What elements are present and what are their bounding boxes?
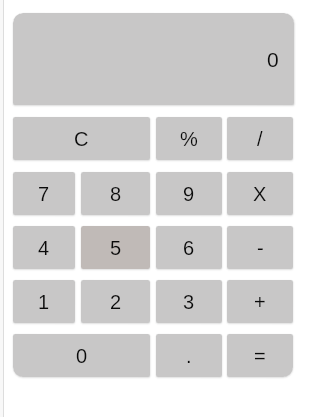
button[interactable]: .: [156, 334, 222, 377]
staticText: +: [254, 291, 266, 313]
button[interactable]: X: [227, 172, 293, 215]
button[interactable]: 9: [156, 172, 222, 215]
button[interactable]: 1: [13, 280, 75, 323]
button[interactable]: C: [13, 117, 150, 160]
staticText: .: [186, 345, 192, 367]
button[interactable]: +: [227, 280, 293, 323]
button[interactable]: /: [227, 117, 293, 160]
staticText: 0: [267, 48, 279, 71]
staticText: 1: [38, 291, 50, 313]
staticText: =: [254, 345, 266, 367]
staticText: 5: [110, 237, 122, 259]
button[interactable]: 6: [156, 226, 222, 269]
button[interactable]: 0: [13, 334, 150, 377]
button[interactable]: 5: [81, 226, 150, 269]
staticText: %: [180, 128, 198, 150]
button[interactable]: 2: [81, 280, 150, 323]
staticText: X: [253, 183, 267, 205]
button[interactable]: 3: [156, 280, 222, 323]
button[interactable]: =: [227, 334, 293, 377]
staticText: C: [74, 128, 89, 150]
staticText: 0: [76, 345, 88, 367]
button[interactable]: 0: [13, 13, 294, 105]
staticText: 7: [38, 183, 50, 205]
staticText: 3: [183, 291, 195, 313]
staticText: -: [257, 237, 264, 259]
staticText: /: [257, 128, 263, 150]
staticText: 9: [183, 183, 195, 205]
staticText: 8: [110, 183, 122, 205]
staticText: 6: [183, 237, 195, 259]
button[interactable]: 8: [81, 172, 150, 215]
staticText: 4: [38, 237, 50, 259]
button[interactable]: -: [227, 226, 293, 269]
button[interactable]: 7: [13, 172, 75, 215]
button[interactable]: 4: [13, 226, 75, 269]
staticText: 2: [110, 291, 122, 313]
button[interactable]: %: [156, 117, 222, 160]
